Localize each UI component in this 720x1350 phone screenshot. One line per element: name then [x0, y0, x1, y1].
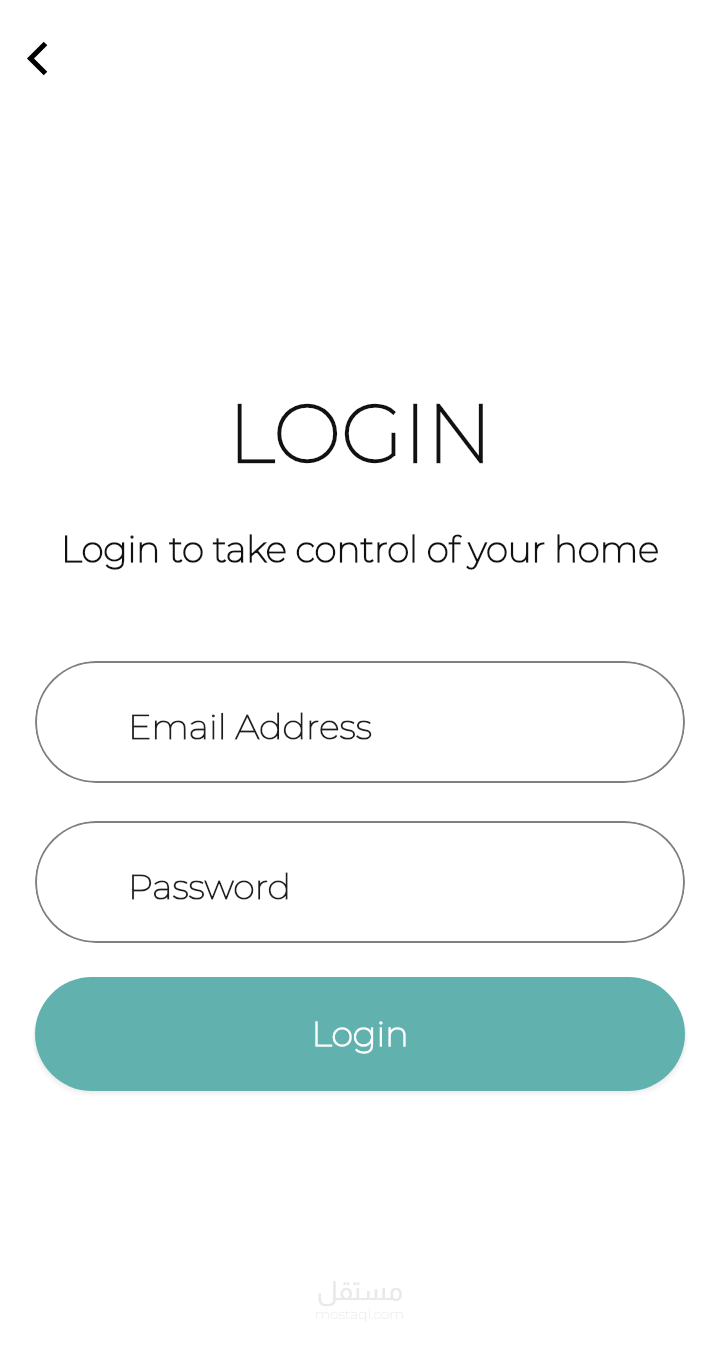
staticText: Email Address — [128, 705, 372, 748]
staticText: مستقل — [317, 1276, 403, 1305]
staticText: Login to take control of your home — [61, 527, 659, 571]
staticText: Password — [128, 865, 291, 908]
staticText: LOGIN — [228, 385, 493, 483]
button[interactable]: Email Address — [35, 661, 685, 783]
staticText: Email Address — [128, 705, 372, 748]
staticText: Login — [311, 1012, 409, 1055]
staticText: LOGIN — [228, 385, 493, 483]
button[interactable]: Back — [6, 26, 70, 90]
staticText: Login — [311, 1012, 409, 1055]
staticText: Password — [128, 865, 291, 908]
button[interactable]: Password — [35, 821, 685, 943]
button[interactable]: Login — [35, 977, 685, 1091]
staticText: Login to take control of your home — [61, 527, 659, 571]
staticText: mostaql.com — [315, 1305, 405, 1322]
